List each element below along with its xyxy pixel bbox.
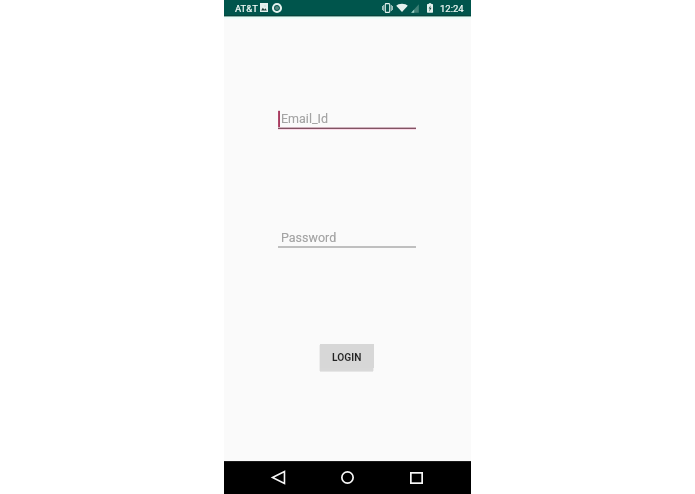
button[interactable]: Back [268, 465, 289, 490]
button[interactable]: Home [337, 465, 358, 490]
staticText: AT&T [235, 3, 258, 14]
staticText: LOGIN [332, 352, 362, 364]
button[interactable]: Email_Id [278, 105, 416, 130]
staticText: 12:24 [440, 3, 464, 14]
button[interactable]: Password [278, 224, 416, 249]
button[interactable]: Recent apps [406, 465, 427, 490]
staticText: Password [281, 230, 337, 245]
staticText: Email_Id [281, 111, 329, 126]
button[interactable]: LOGIN [320, 344, 374, 368]
